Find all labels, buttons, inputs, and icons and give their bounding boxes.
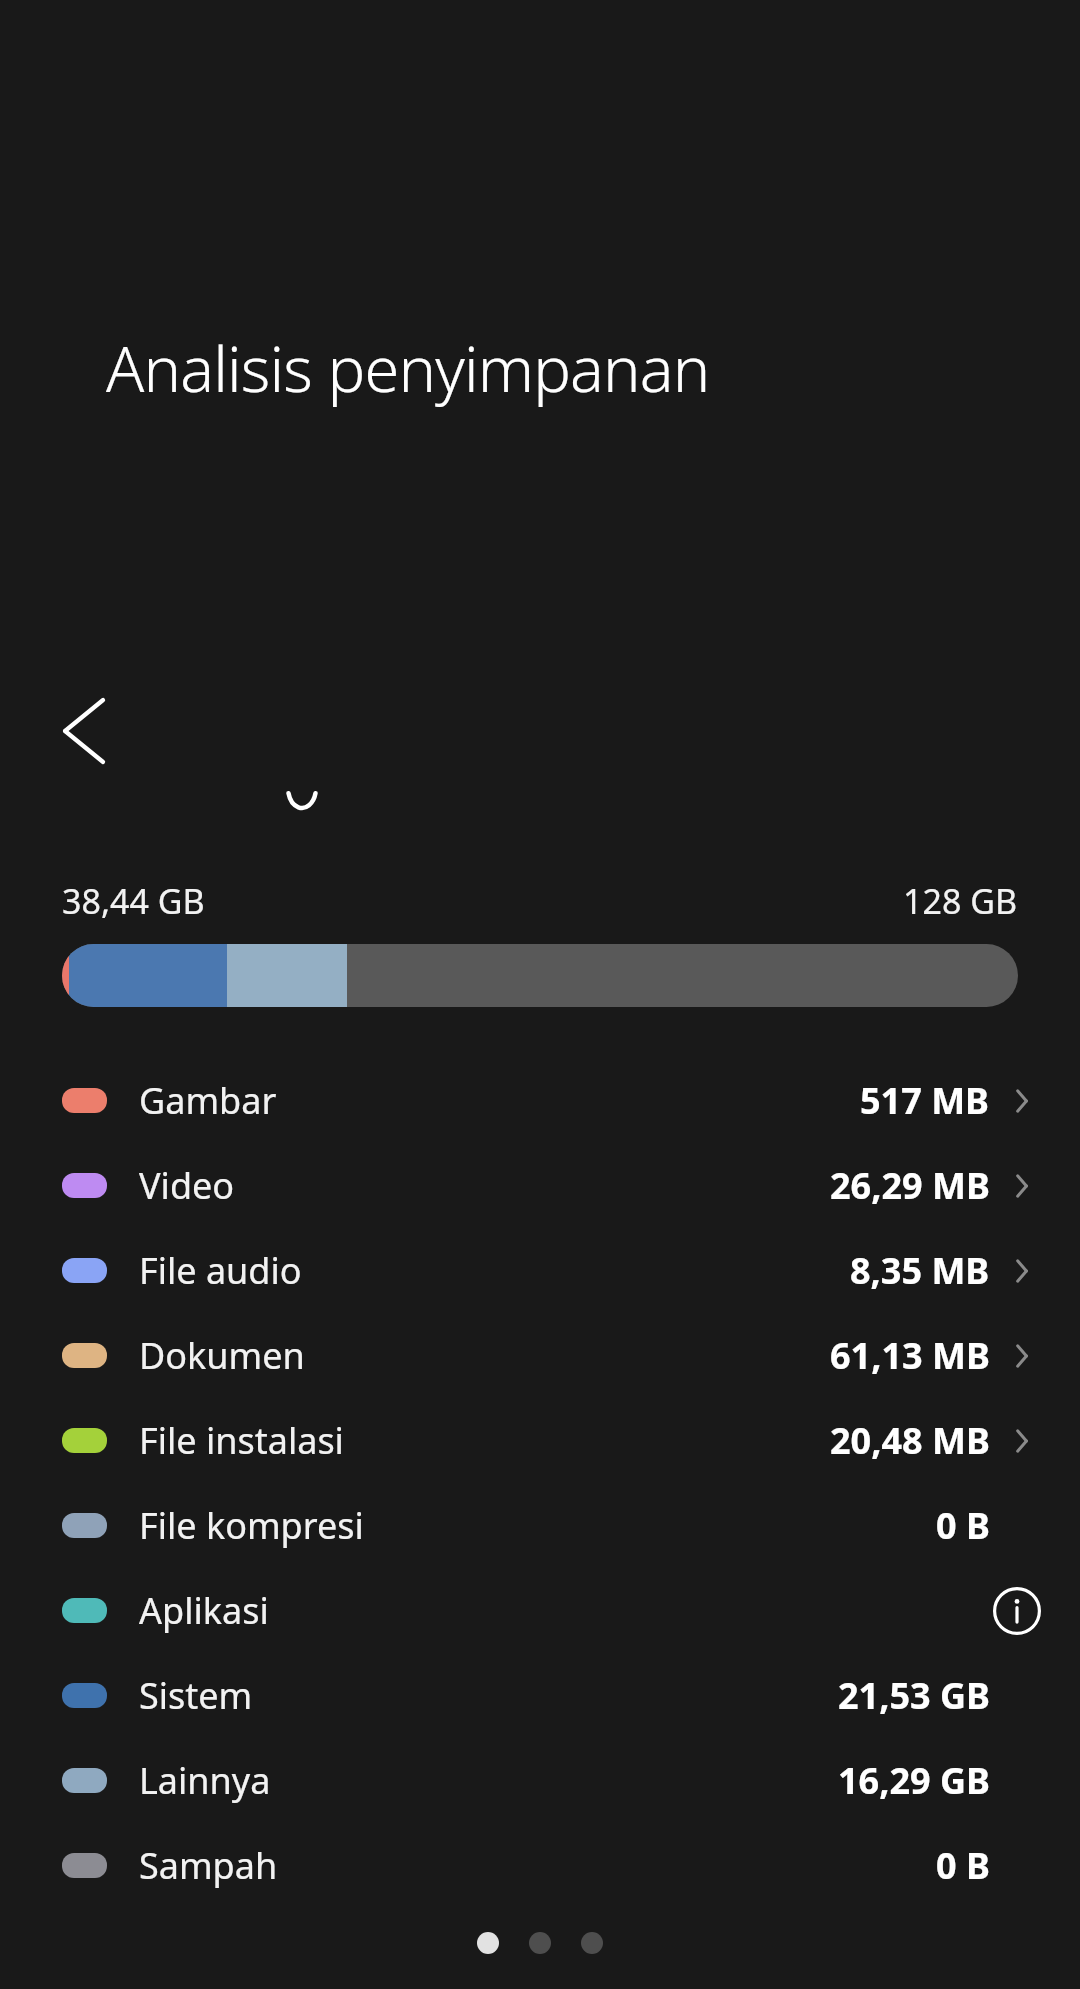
button[interactable]: Lainnya [0, 1738, 1080, 1823]
staticText: Sistem [139, 1671, 253, 1720]
staticText: 8,35 MB [850, 1246, 990, 1295]
staticText: 16,29 GB [838, 1756, 990, 1805]
staticText: 38,44 GB [62, 878, 205, 924]
button[interactable]: File instalasi [0, 1398, 1080, 1483]
button[interactable]: Open File audio [990, 1240, 1052, 1302]
button[interactable]: Page 2 [529, 1932, 551, 1954]
staticText: 61,13 MB [830, 1331, 990, 1380]
staticText: Aplikasi [139, 1586, 269, 1635]
staticText: 517 MB [860, 1076, 990, 1125]
button[interactable]: Gambar [0, 1058, 1080, 1143]
staticText: Gambar [139, 1076, 277, 1125]
button[interactable]: App info [984, 1578, 1050, 1644]
button[interactable]: Page 3 [581, 1932, 603, 1954]
button[interactable]: Open File instalasi [990, 1410, 1052, 1472]
button[interactable]: Open Gambar [990, 1070, 1052, 1132]
button[interactable]: File audio [0, 1228, 1080, 1313]
staticText: File audio [139, 1246, 302, 1295]
button[interactable]: File kompresi [0, 1483, 1080, 1568]
staticText: 128 GB [903, 878, 1018, 924]
button[interactable]: Dokumen [0, 1313, 1080, 1398]
button[interactable]: Sampah [0, 1823, 1080, 1908]
staticText: Dokumen [139, 1331, 305, 1380]
staticText: Sampah [139, 1841, 278, 1890]
staticText: Lainnya [139, 1756, 271, 1805]
staticText: 0 B [936, 1841, 990, 1890]
staticText: File kompresi [139, 1501, 364, 1550]
staticText: Video [139, 1161, 235, 1210]
staticText: 0 B [936, 1501, 990, 1550]
button[interactable]: Video [0, 1143, 1080, 1228]
staticText: File instalasi [139, 1416, 344, 1465]
button[interactable]: Open Dokumen [990, 1325, 1052, 1387]
staticText: 21,53 GB [838, 1671, 990, 1720]
staticText: 26,29 MB [830, 1161, 990, 1210]
button[interactable]: Sistem [0, 1653, 1080, 1738]
staticText: 20,48 MB [830, 1416, 990, 1465]
button[interactable]: Page 1 [477, 1932, 499, 1954]
button[interactable] [62, 944, 1018, 1007]
staticText: Analisis penyimpanan [106, 325, 710, 411]
button[interactable]: Back [38, 682, 136, 780]
button[interactable]: Open Video [990, 1155, 1052, 1217]
button[interactable]: Aplikasi [0, 1568, 1080, 1653]
